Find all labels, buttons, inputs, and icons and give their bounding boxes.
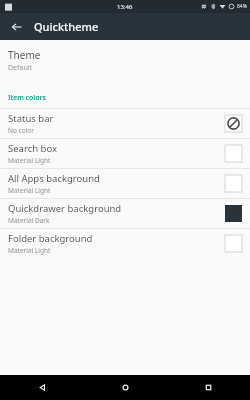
button[interactable]: All Apps background xyxy=(0,169,250,198)
staticText: Folder background xyxy=(8,232,93,245)
staticText: Material Light xyxy=(8,246,51,255)
button[interactable]: Back xyxy=(0,13,34,40)
button[interactable]: Recent apps xyxy=(167,375,250,400)
staticText: 64% xyxy=(237,3,247,10)
staticText: Search box xyxy=(8,142,57,155)
staticText: 13:46 xyxy=(117,3,133,11)
button[interactable]: Search box xyxy=(0,139,250,168)
staticText: Material Light xyxy=(8,186,51,195)
staticText: No color xyxy=(8,126,34,135)
button[interactable]: Back xyxy=(0,375,84,400)
staticText: Default xyxy=(8,63,33,73)
button[interactable]: Folder background xyxy=(0,229,250,258)
button[interactable]: Theme xyxy=(0,40,250,79)
staticText: Theme xyxy=(8,48,41,62)
button[interactable]: Status bar xyxy=(0,109,250,138)
staticText: Material Dark xyxy=(8,216,50,225)
staticText: Status bar xyxy=(8,112,54,125)
staticText: All Apps background xyxy=(8,172,100,185)
button[interactable]: Quickdrawer background xyxy=(0,199,250,228)
staticText: Quickdrawer background xyxy=(8,202,122,215)
button[interactable]: Home xyxy=(84,375,167,400)
staticText: Material Light xyxy=(8,156,51,165)
staticText: Item colors xyxy=(8,93,46,103)
staticText: Quicktheme xyxy=(34,19,99,34)
